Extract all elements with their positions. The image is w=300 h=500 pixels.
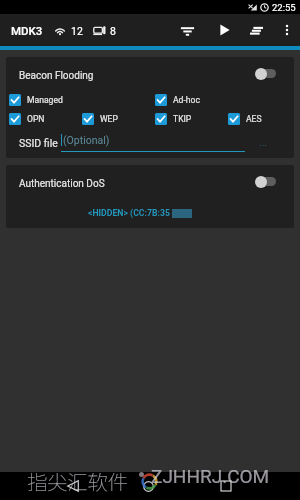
button[interactable]: Authentication DoS [6, 165, 294, 198]
staticText: Authentication DoS [19, 178, 105, 190]
button[interactable]: Managed [9, 90, 155, 109]
staticText: (Optional) [63, 134, 110, 146]
button[interactable]: Home [134, 472, 162, 500]
button[interactable]: Browse [253, 133, 273, 153]
staticText: AES [246, 114, 262, 124]
staticText: 指尖汇软件 [27, 466, 128, 496]
button[interactable]: Recent apps [212, 472, 240, 500]
staticText: <HIDDEN> (CC:7B:35 [88, 208, 170, 218]
staticText: Beacon Flooding [19, 70, 94, 82]
staticText: Managed [27, 95, 63, 105]
button[interactable]: Back [59, 472, 87, 500]
button[interactable]: TKIP [155, 109, 228, 128]
button[interactable]: Beacon Flooding [6, 57, 294, 90]
staticText: TKIP [173, 114, 192, 124]
staticText: 8 [110, 25, 116, 37]
button[interactable]: OPN [9, 109, 82, 128]
button[interactable]: <HIDDEN> (CC:7B:35 [6, 198, 294, 228]
button[interactable]: WEP [82, 109, 155, 128]
button[interactable]: Start attack [208, 14, 240, 46]
staticText: Ad-hoc [173, 95, 200, 105]
staticText: ... [259, 137, 267, 149]
staticText: OPN [27, 114, 45, 124]
button[interactable]: More options [271, 14, 300, 46]
button[interactable]: Filter [171, 14, 203, 46]
staticText: MDK3 [11, 24, 43, 37]
staticText: 12 [71, 25, 83, 37]
button[interactable]: AES [228, 109, 294, 128]
staticText: SSID file [19, 137, 58, 149]
staticText: 22:55 [272, 2, 296, 13]
staticText: ZJHHRJ.COM [151, 465, 270, 487]
button[interactable]: Sort [240, 14, 272, 46]
button[interactable]: Ad-hoc [155, 90, 294, 109]
staticText: WEP [100, 114, 118, 124]
button[interactable]: (Optional) [61, 134, 245, 152]
